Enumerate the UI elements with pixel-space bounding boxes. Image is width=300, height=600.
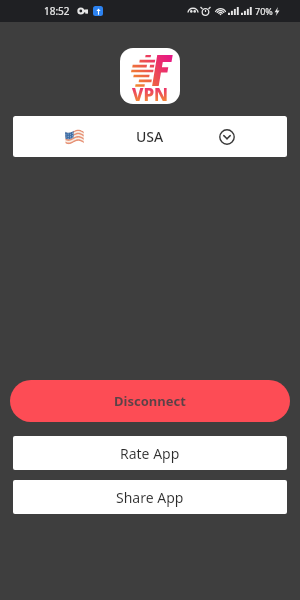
staticText: 18:52 bbox=[44, 4, 70, 18]
staticText: Rate App bbox=[120, 444, 180, 463]
staticText: Share App bbox=[116, 488, 184, 507]
other: Choose server location bbox=[219, 129, 235, 145]
button[interactable]: USA bbox=[13, 116, 287, 157]
staticText: USA bbox=[136, 127, 164, 146]
button[interactable]: Rate App bbox=[13, 436, 287, 470]
staticText: VPN bbox=[132, 83, 169, 104]
staticText: Disconnect bbox=[114, 392, 186, 410]
button[interactable]: Disconnect bbox=[10, 380, 290, 422]
staticText: 70% bbox=[255, 5, 273, 17]
button[interactable]: Share App bbox=[13, 480, 287, 514]
